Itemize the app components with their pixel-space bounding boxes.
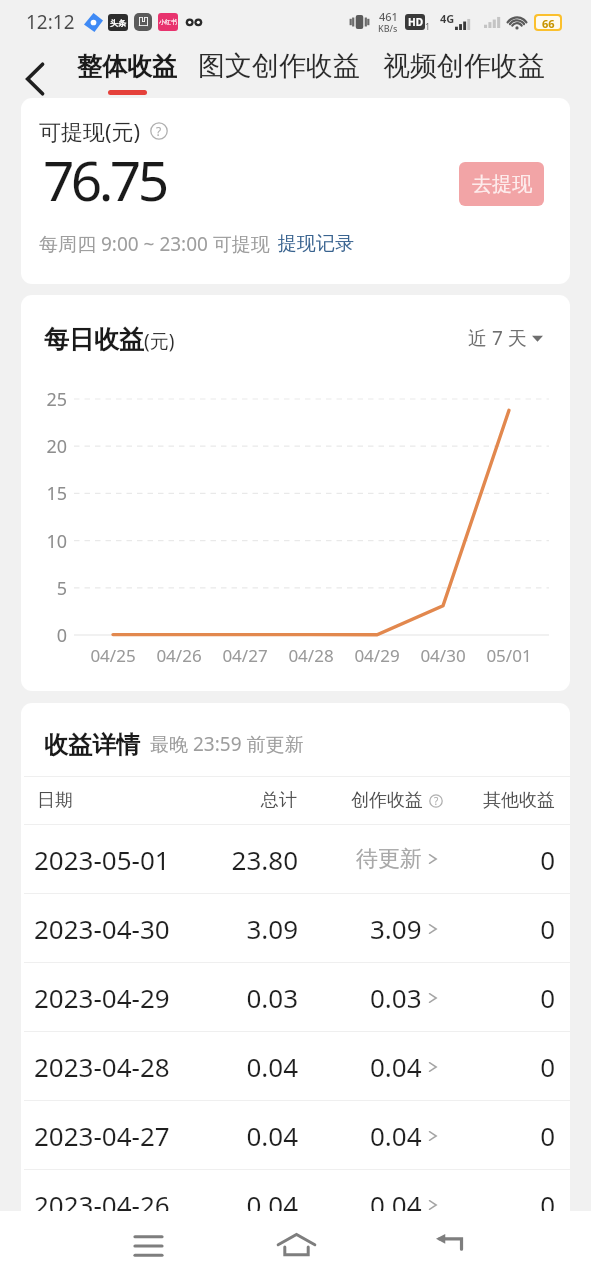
button[interactable]: 提现记录 <box>278 232 354 256</box>
staticText: 3.09 <box>188 911 298 946</box>
staticText: 2023-04-26 <box>34 1187 170 1222</box>
button[interactable]: 2023-05-01 <box>21 825 570 893</box>
staticText: 15 <box>25 481 67 506</box>
staticText: 最晚 23:59 前更新 <box>150 731 304 757</box>
button[interactable]: Home <box>262 1211 330 1280</box>
button[interactable]: Back <box>416 1211 484 1280</box>
staticText: ? <box>156 123 162 139</box>
staticText: 0 <box>470 1118 555 1153</box>
staticText: 0 <box>25 623 67 648</box>
button[interactable]: Recent apps <box>114 1211 182 1280</box>
staticText: 0 <box>470 842 555 877</box>
button[interactable]: 2023-04-28 <box>21 1032 570 1100</box>
staticText: 04/28 <box>276 644 346 667</box>
staticText: 2023-04-27 <box>34 1118 170 1153</box>
staticText: 视频创作收益 <box>383 49 545 83</box>
staticText: 04/29 <box>342 644 412 667</box>
staticText: 0.04 <box>370 1118 422 1153</box>
staticText: 0.03 <box>188 980 298 1015</box>
staticText: 凹 <box>138 15 149 29</box>
staticText: 图文创作收益 <box>198 49 360 83</box>
staticText: 2023-04-30 <box>34 911 170 946</box>
staticText: KB/s <box>378 22 398 34</box>
staticText: 3.09 <box>370 911 422 946</box>
staticText: 日期 <box>37 789 73 812</box>
staticText: 0 <box>470 1187 555 1222</box>
staticText: HD <box>408 15 423 29</box>
button[interactable]: 2023-04-26 <box>21 1170 570 1238</box>
staticText: 1 <box>425 20 431 32</box>
staticText: 04/27 <box>210 644 280 667</box>
staticText: 04/26 <box>144 644 214 667</box>
staticText: 0.04 <box>188 1118 298 1153</box>
staticText: 小红书 <box>159 18 177 26</box>
staticText: 可提现(元) <box>39 116 141 146</box>
staticText: 0 <box>470 980 555 1015</box>
staticText: 总计 <box>217 789 297 812</box>
staticText: ? <box>434 794 439 808</box>
staticText: 23.80 <box>188 842 298 877</box>
staticText: 66 <box>542 16 555 29</box>
staticText: 每周四 9:00 ~ 23:00 可提现 <box>39 231 270 257</box>
staticText: 2023-05-01 <box>34 842 170 877</box>
staticText: 05/01 <box>474 644 544 667</box>
staticText: 4G <box>440 11 455 26</box>
button[interactable]: 近 7 天 <box>468 325 543 351</box>
staticText: 0 <box>470 1049 555 1084</box>
staticText: 0.04 <box>370 1187 422 1222</box>
staticText: 0.03 <box>370 980 422 1015</box>
staticText: 04/30 <box>408 644 478 667</box>
staticText: 76.75 <box>43 142 166 217</box>
staticText: 0.04 <box>188 1187 298 1222</box>
staticText: (元) <box>144 328 175 354</box>
staticText: 其他收益 <box>470 789 555 812</box>
staticText: 20 <box>25 434 67 459</box>
staticText: 461 <box>379 9 398 24</box>
button[interactable]: 去提现 <box>459 162 544 206</box>
staticText: 每日收益 <box>44 324 144 355</box>
staticText: 提现记录 <box>278 232 354 256</box>
button[interactable]: 2023-04-29 <box>21 963 570 1031</box>
staticText: 整体收益 <box>77 51 177 82</box>
staticText: 创作收益 <box>351 789 423 812</box>
button[interactable]: 视频创作收益 <box>383 49 545 96</box>
staticText: 10 <box>25 529 67 554</box>
staticText: 2023-04-28 <box>34 1049 170 1084</box>
button[interactable]: Back <box>12 57 56 101</box>
button[interactable]: 2023-04-27 <box>21 1101 570 1169</box>
staticText: 收益详情 <box>44 730 140 760</box>
staticText: 近 7 天 <box>468 325 527 351</box>
staticText: 待更新 <box>356 845 422 873</box>
staticText: 12:12 <box>26 9 75 35</box>
staticText: 5 <box>25 576 67 601</box>
staticText: 25 <box>25 387 67 412</box>
staticText: 04/25 <box>78 644 148 667</box>
button[interactable]: 整体收益 <box>77 51 177 95</box>
staticText: 0 <box>470 911 555 946</box>
staticText: 0.04 <box>370 1049 422 1084</box>
staticText: 头条 <box>110 18 126 28</box>
staticText: 2023-04-29 <box>34 980 170 1015</box>
staticText: 去提现 <box>472 172 532 197</box>
button[interactable]: 图文创作收益 <box>198 49 360 96</box>
staticText: 0.04 <box>188 1049 298 1084</box>
button[interactable]: 2023-04-30 <box>21 894 570 962</box>
